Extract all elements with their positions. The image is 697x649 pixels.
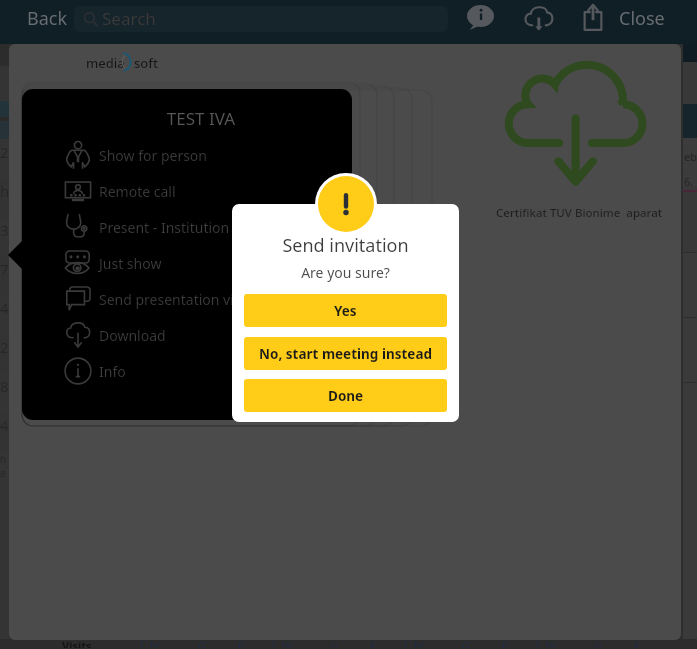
button[interactable]: Remote call xyxy=(22,173,352,209)
staticText: 3C xyxy=(0,220,9,240)
button[interactable]: Close xyxy=(617,4,667,33)
staticText: G xyxy=(462,638,471,648)
staticText: Show for person xyxy=(99,146,207,165)
staticText: I IV xyxy=(140,638,160,648)
staticText: Search xyxy=(102,7,156,30)
staticText: 8 xyxy=(0,376,9,396)
staticText: G xyxy=(594,638,603,648)
staticText: 6. xyxy=(684,174,694,189)
staticText: eb xyxy=(684,149,697,164)
staticText: Info xyxy=(99,362,126,381)
button[interactable]: Download xyxy=(22,317,352,353)
button[interactable]: Show for person xyxy=(22,137,352,173)
button[interactable]: Info xyxy=(22,353,352,389)
button[interactable]: Back xyxy=(25,4,70,33)
staticText: 2 xyxy=(0,337,9,357)
staticText: Download xyxy=(99,326,166,345)
button[interactable]: Info xyxy=(467,5,494,30)
button[interactable]: Send presentation via mail xyxy=(22,281,352,317)
staticText: F xyxy=(370,638,376,648)
staticText: Visits xyxy=(62,638,92,648)
staticText: I IV xyxy=(536,638,556,648)
button[interactable]: Search xyxy=(74,6,448,32)
staticText: G xyxy=(198,638,207,648)
staticText: soft xyxy=(134,54,158,72)
staticText: F xyxy=(502,638,508,648)
staticText: Are you sure? xyxy=(232,263,459,282)
staticText: Just show xyxy=(99,254,162,273)
staticText: media xyxy=(86,54,125,72)
staticText: Certifikat TUV Bionime aparat xyxy=(496,205,663,221)
staticText: 2 xyxy=(0,142,9,162)
staticText: I IV xyxy=(272,638,292,648)
button[interactable]: Present - Institution xyxy=(22,209,352,245)
staticText: F xyxy=(634,638,640,648)
staticText: G xyxy=(330,638,339,648)
staticText: Present - Institution xyxy=(99,218,230,237)
staticText: 4 xyxy=(0,415,9,435)
staticText: Send presentation via mail xyxy=(99,290,274,309)
staticText: TEST IVA xyxy=(36,107,352,130)
staticText: Send invitation xyxy=(232,233,459,258)
button[interactable]: Share xyxy=(582,4,604,31)
staticText: Remote call xyxy=(99,182,176,201)
staticText: 4 xyxy=(0,298,9,318)
staticText: No, start meeting instead xyxy=(259,345,433,363)
button[interactable]: Done xyxy=(244,379,447,412)
staticText: Yes xyxy=(334,302,357,320)
staticText: h xyxy=(0,181,9,201)
staticText: I IV xyxy=(404,638,424,648)
staticText: 7 xyxy=(0,259,9,279)
staticText: F xyxy=(238,638,244,648)
button[interactable]: Just show xyxy=(22,245,352,281)
button[interactable]: Download xyxy=(522,5,555,31)
button[interactable]: Yes xyxy=(244,294,447,327)
staticText: Done xyxy=(328,387,364,405)
button[interactable]: No, start meeting instead xyxy=(244,337,447,370)
